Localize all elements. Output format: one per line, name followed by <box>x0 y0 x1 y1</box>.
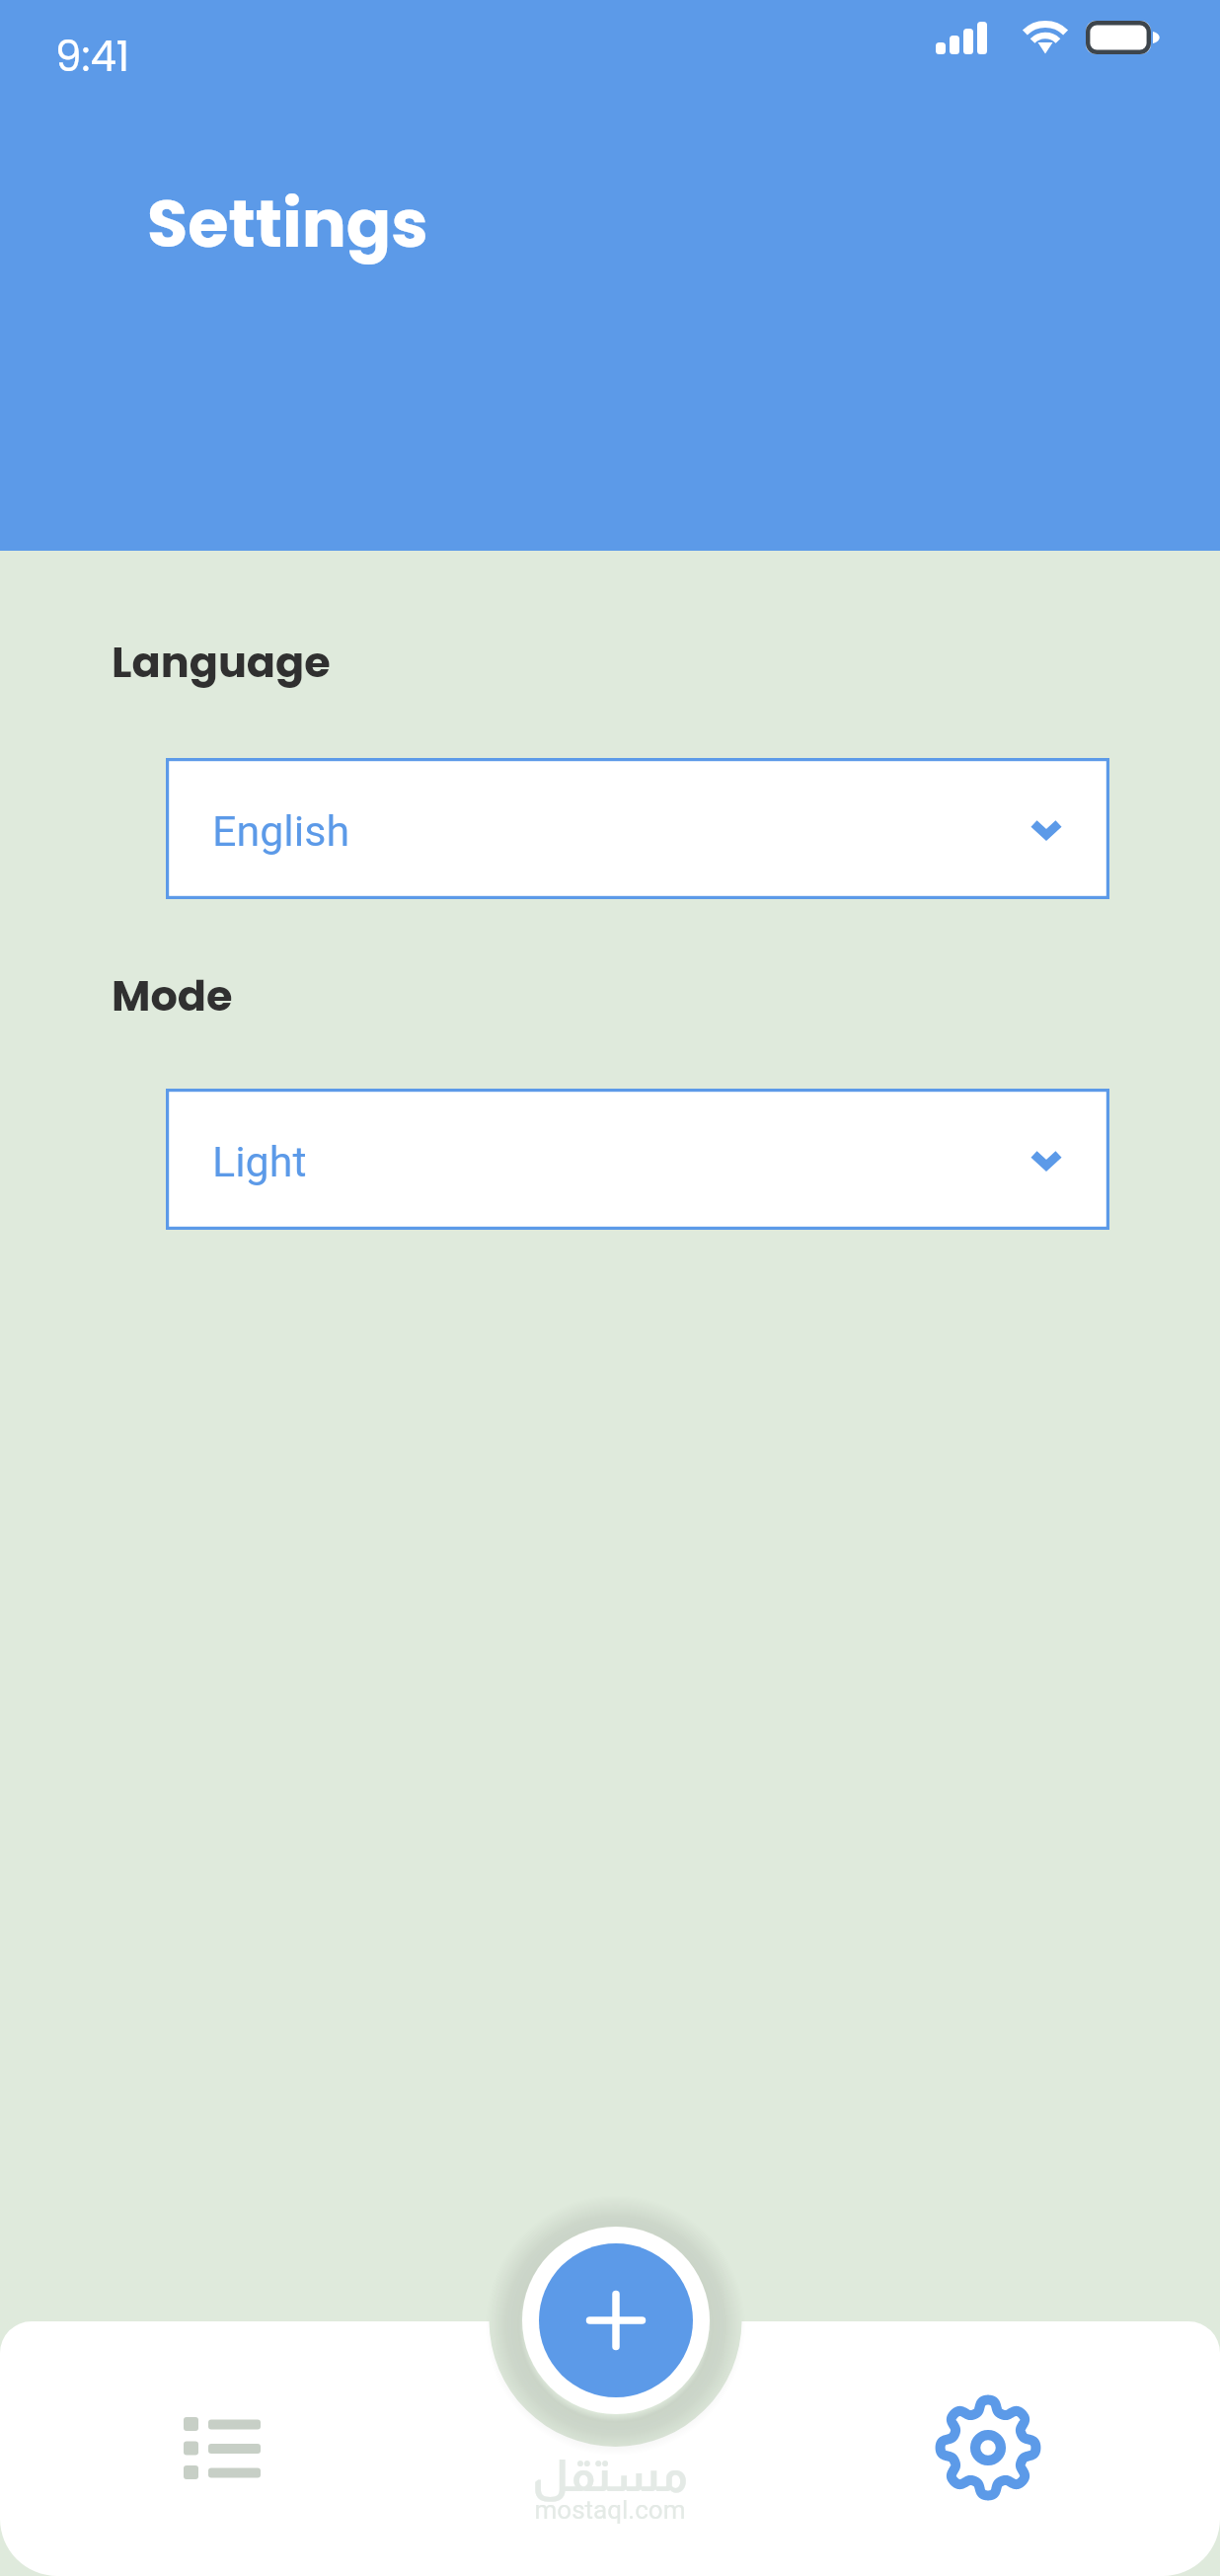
staticText: Language <box>112 633 331 692</box>
button[interactable]: List <box>148 2374 296 2522</box>
staticText: mostaql.com <box>467 2495 753 2525</box>
staticText: 9:41 <box>55 28 130 86</box>
staticText: Mode <box>112 966 233 1025</box>
staticText: Settings <box>147 178 428 270</box>
staticText: English <box>212 806 350 856</box>
button[interactable]: Light <box>166 1089 1109 1230</box>
button[interactable]: English <box>166 758 1109 899</box>
staticText: Light <box>212 1137 307 1186</box>
button[interactable]: Settings <box>914 2374 1062 2522</box>
staticText: مستقل <box>467 2451 753 2500</box>
button[interactable]: Add <box>522 2227 710 2414</box>
